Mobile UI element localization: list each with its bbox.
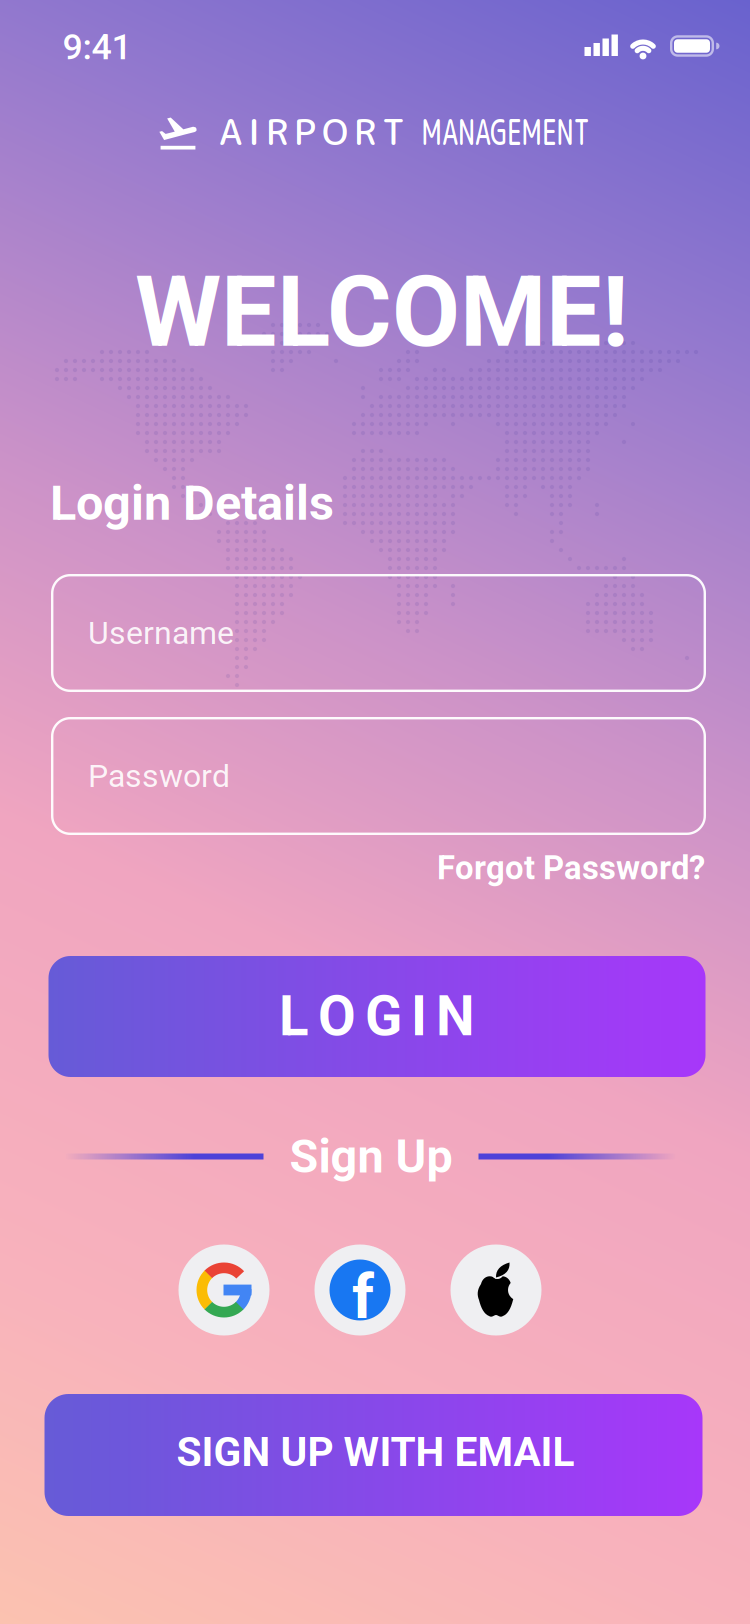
staticText: Sign Up xyxy=(289,1129,452,1184)
staticText: A I R P O R T xyxy=(219,106,405,157)
staticText: 9:41 xyxy=(62,26,131,68)
button[interactable]: Sign up with Apple xyxy=(450,1244,541,1335)
button[interactable]: Forgot Password? xyxy=(437,849,705,887)
staticText: Login Details xyxy=(50,474,334,531)
staticText: WELCOME! xyxy=(135,254,629,370)
button[interactable]: Sign up with Facebook xyxy=(314,1244,405,1335)
staticText: Password xyxy=(88,757,230,795)
staticText: f xyxy=(352,1261,374,1333)
staticText: SIGN UP WITH EMAIL xyxy=(176,1428,574,1476)
staticText: Username xyxy=(88,614,234,652)
staticText: MANAGEMENT xyxy=(383,106,628,157)
button[interactable]: Password xyxy=(51,717,706,835)
button[interactable]: Username xyxy=(51,574,706,692)
staticText: L O G I N xyxy=(279,984,475,1049)
staticText: Forgot Password? xyxy=(437,849,705,887)
button[interactable]: SIGN UP WITH EMAIL xyxy=(44,1394,702,1516)
button[interactable]: Sign up with Google xyxy=(178,1244,269,1335)
button[interactable]: L O G I N xyxy=(48,956,705,1077)
